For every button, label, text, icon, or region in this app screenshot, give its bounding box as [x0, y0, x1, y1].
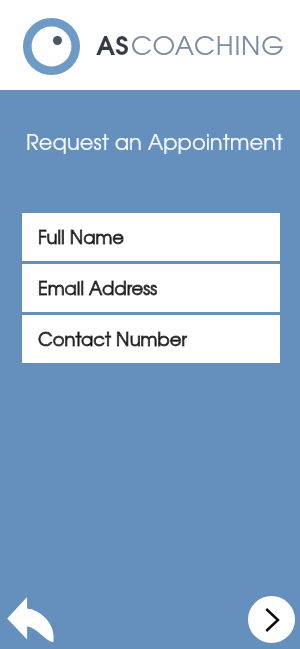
button[interactable]: Next	[248, 596, 295, 643]
button[interactable]: Email Address	[22, 264, 280, 312]
staticText: AS	[96, 36, 129, 60]
staticText: Email Address	[38, 282, 158, 299]
staticText: Full Name	[38, 231, 125, 248]
staticText: Request an Appointment	[26, 134, 284, 154]
staticText: Contact Number	[38, 333, 187, 350]
button[interactable]: Contact Number	[22, 315, 280, 363]
staticText: Email Address	[38, 282, 158, 299]
button[interactable]: Full Name	[22, 213, 280, 261]
staticText: Contact Number	[38, 333, 187, 350]
button[interactable]: Back	[4, 593, 58, 647]
staticText: Full Name	[38, 231, 125, 248]
staticText: COACHING	[131, 36, 285, 60]
